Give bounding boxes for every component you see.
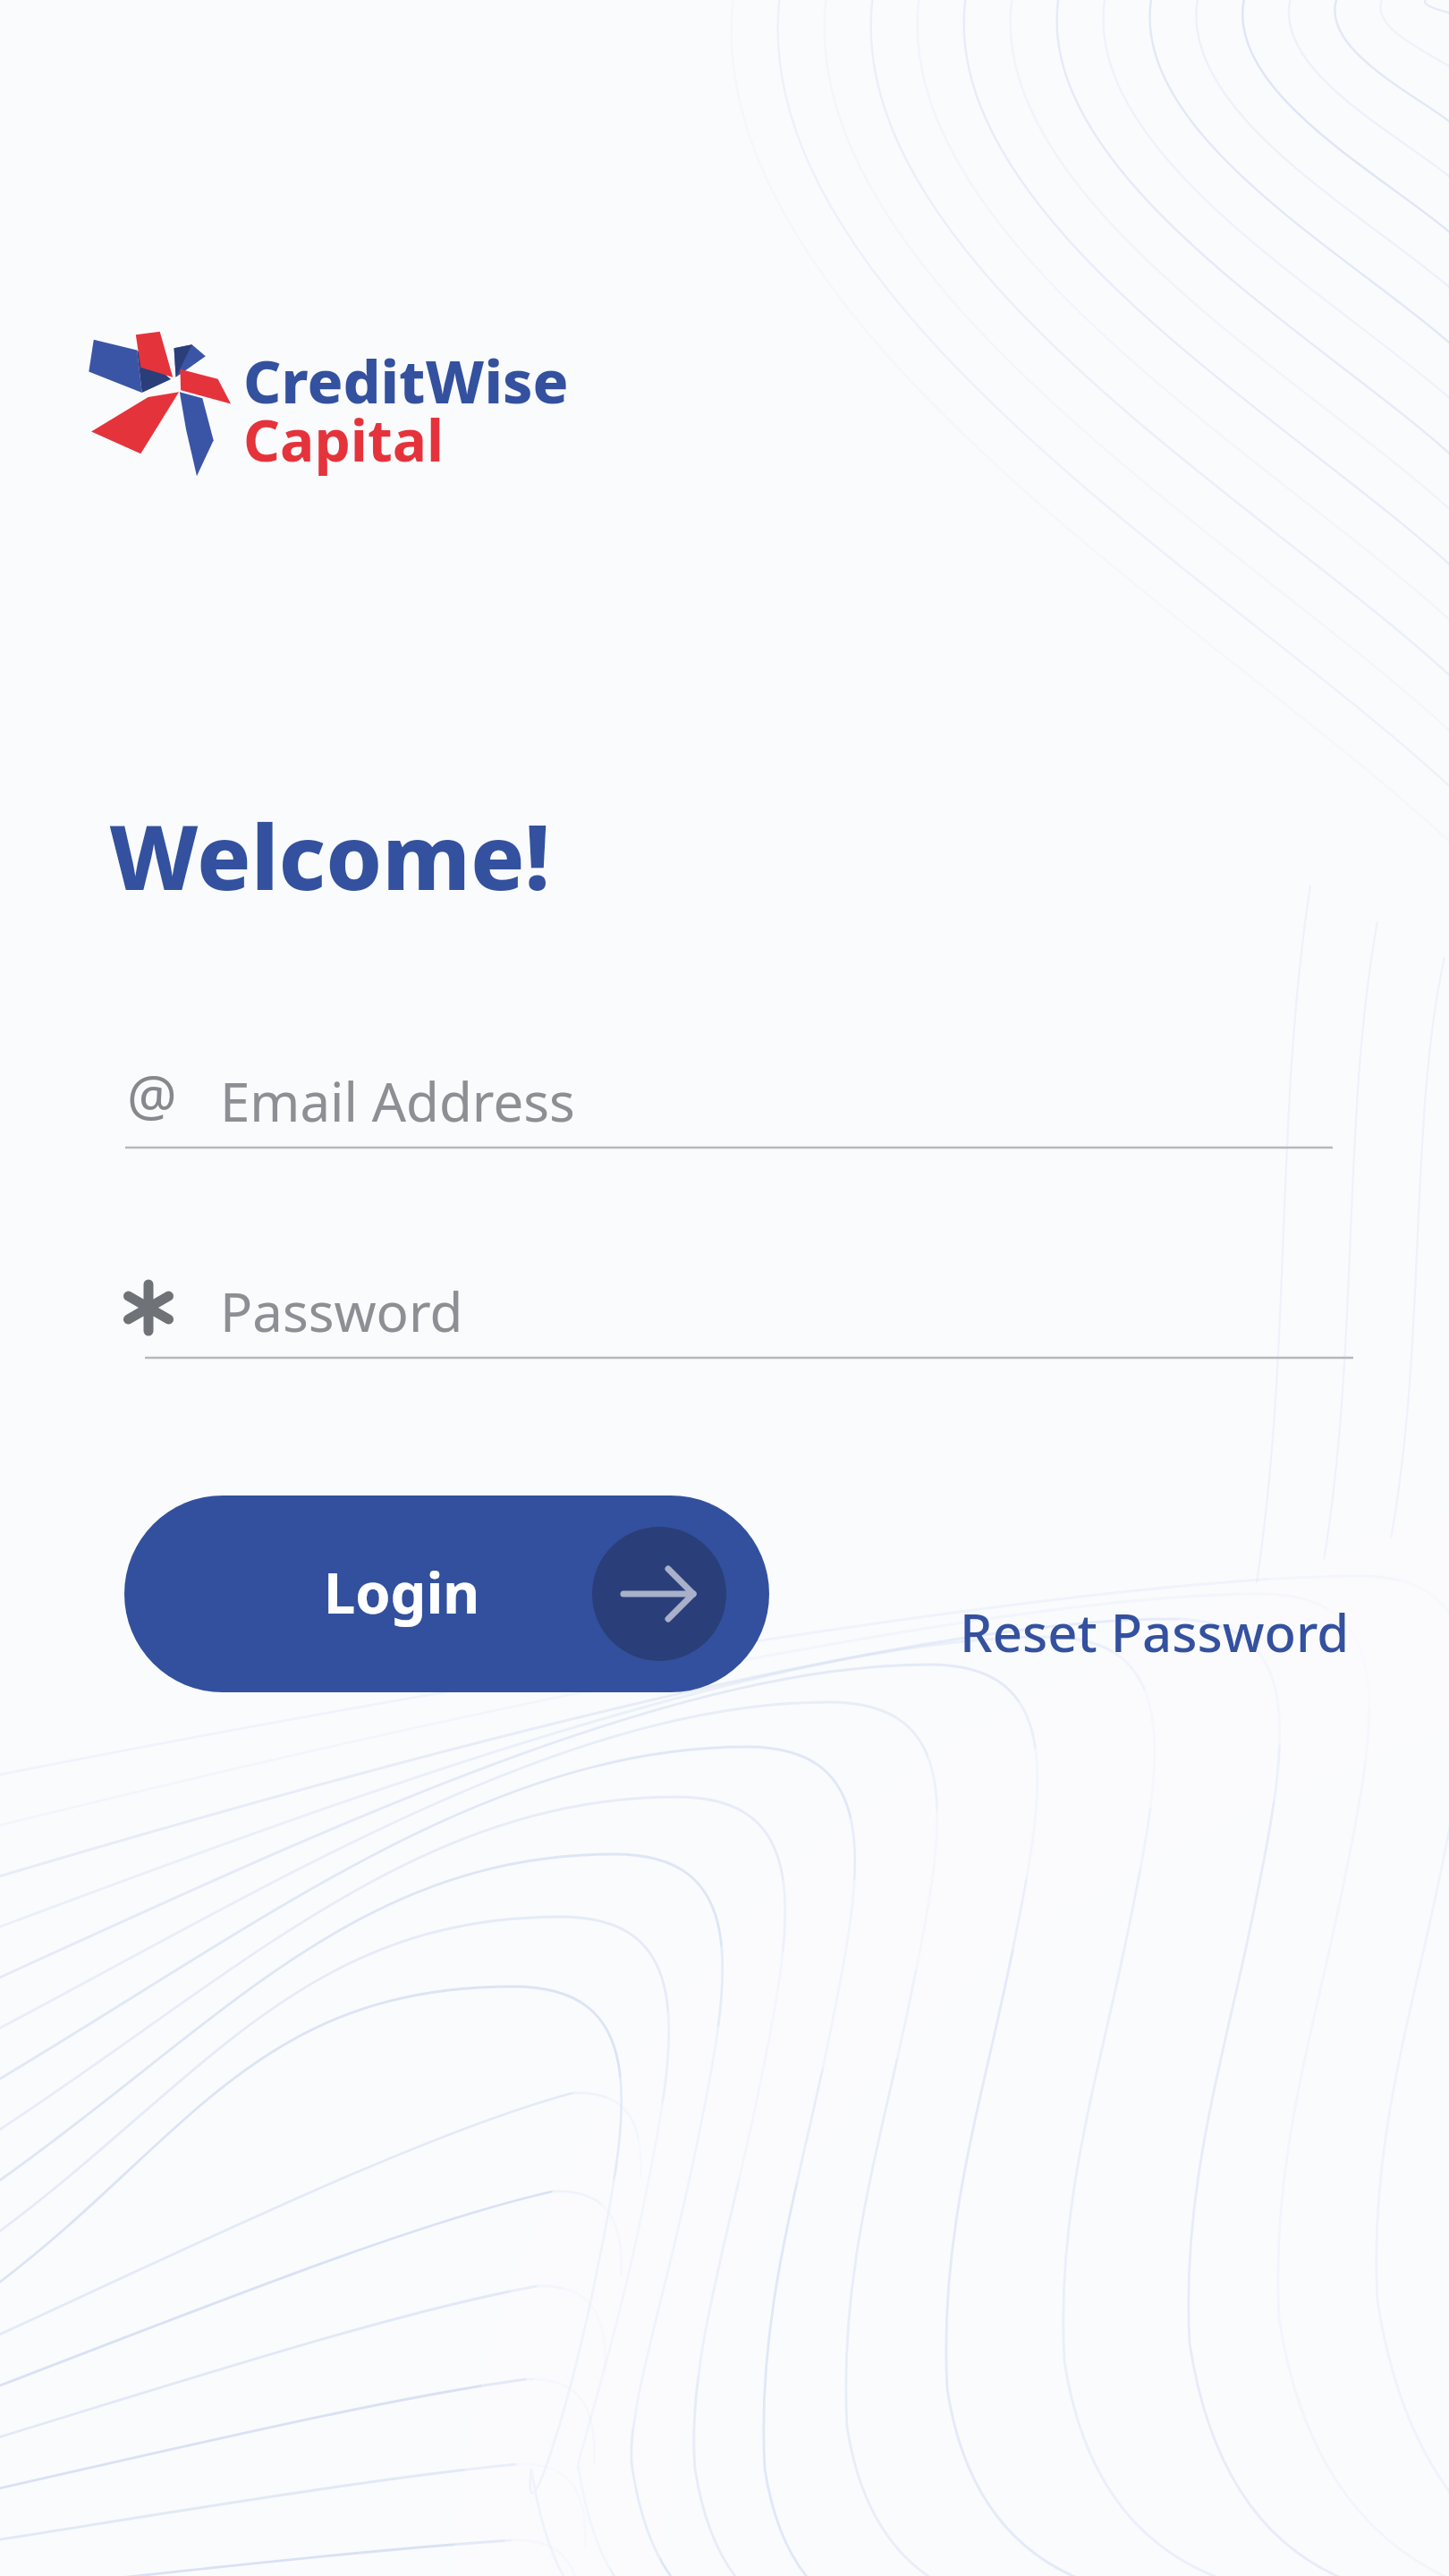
staticText: CreditWise xyxy=(243,340,569,420)
button[interactable]: @ xyxy=(125,1048,1333,1148)
staticText: Welcome! xyxy=(109,794,551,916)
button[interactable]: Reset Password xyxy=(960,1597,1350,1667)
staticText: Capital xyxy=(243,401,445,479)
button[interactable]: Password xyxy=(125,1258,1353,1358)
button[interactable]: Login xyxy=(124,1496,769,1692)
staticText: Password xyxy=(220,1275,463,1348)
staticText: @ xyxy=(127,1056,177,1131)
staticText: Login xyxy=(324,1554,480,1631)
staticText: Reset Password xyxy=(960,1597,1350,1667)
staticText: Email Address xyxy=(220,1064,575,1138)
